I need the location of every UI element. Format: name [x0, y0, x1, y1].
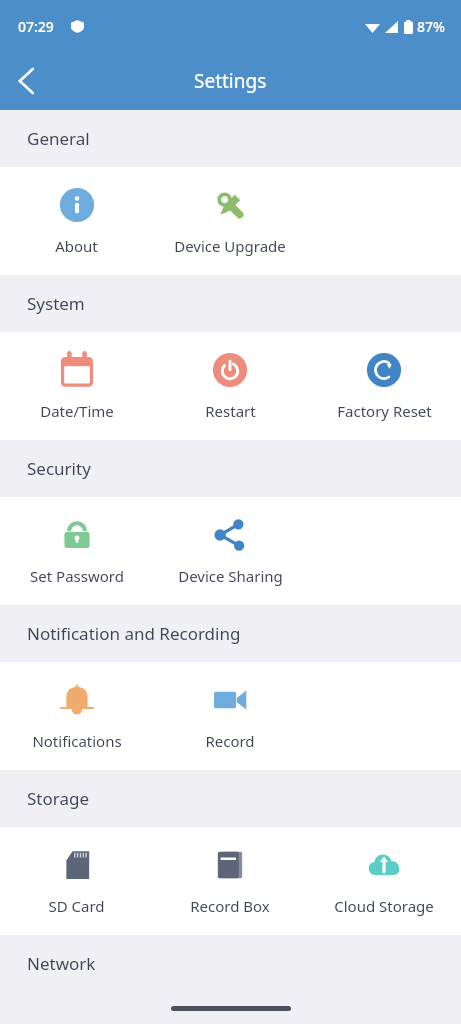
staticText: General: [27, 127, 90, 150]
staticText: Restart: [205, 401, 256, 421]
staticText: Network: [27, 952, 96, 975]
button[interactable]: Restart: [153, 332, 307, 440]
staticText: 87%: [417, 17, 445, 36]
button[interactable]: Notifications: [0, 662, 153, 770]
button[interactable]: Record: [153, 662, 307, 770]
button[interactable]: Record Box: [153, 827, 307, 935]
staticText: Device Sharing: [178, 566, 283, 586]
staticText: Security: [27, 457, 91, 480]
button[interactable]: Back: [0, 55, 52, 107]
button[interactable]: SD Card: [0, 827, 153, 935]
staticText: Record: [205, 731, 255, 751]
button[interactable]: Device Upgrade: [153, 167, 307, 275]
staticText: Factory Reset: [337, 401, 432, 421]
staticText: System: [27, 292, 85, 315]
staticText: 07:29: [18, 17, 54, 36]
staticText: SD Card: [48, 896, 105, 916]
button[interactable]: Date/Time: [0, 332, 153, 440]
button[interactable]: About: [0, 167, 153, 275]
staticText: Set Password: [30, 566, 124, 586]
button[interactable]: Cloud Storage: [307, 827, 461, 935]
staticText: Settings: [194, 68, 267, 94]
staticText: Notifications: [32, 731, 122, 751]
button[interactable]: Factory Reset: [307, 332, 461, 440]
staticText: Storage: [27, 787, 90, 810]
staticText: About: [55, 236, 98, 256]
button[interactable]: Device Sharing: [153, 497, 307, 605]
staticText: Date/Time: [40, 401, 114, 421]
staticText: Device Upgrade: [174, 236, 286, 256]
button[interactable]: Set Password: [0, 497, 153, 605]
staticText: Record Box: [190, 896, 270, 916]
staticText: Notification and Recording: [27, 622, 241, 645]
staticText: Cloud Storage: [334, 896, 434, 916]
